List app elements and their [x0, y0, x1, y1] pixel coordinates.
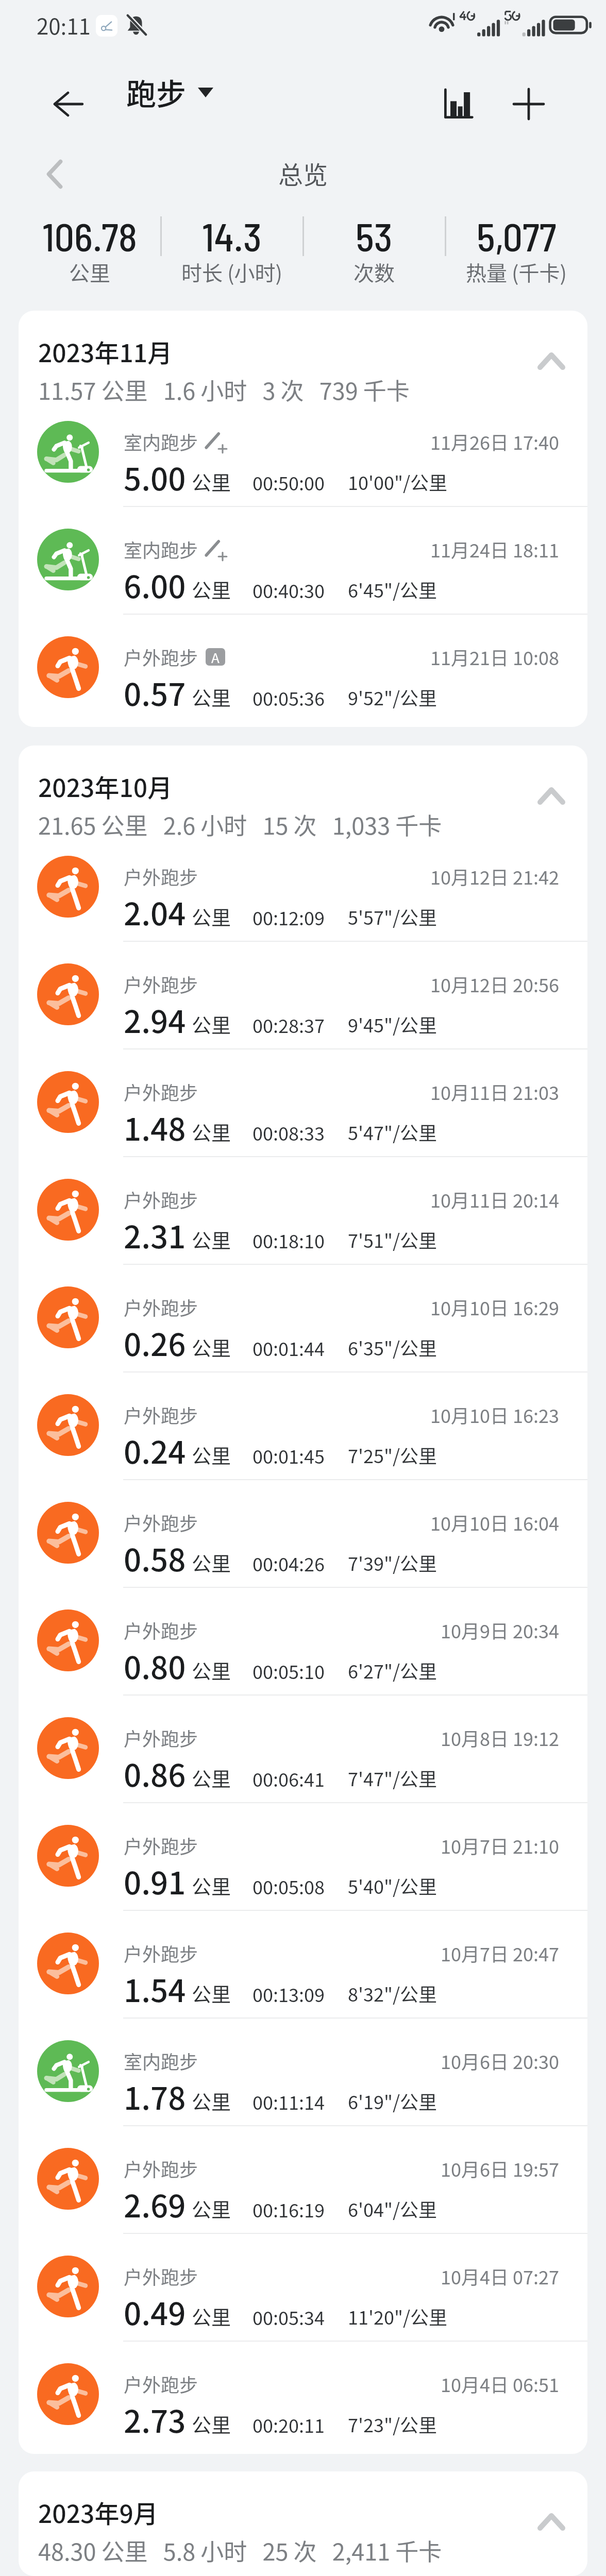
staticText: 5,077 [477, 212, 557, 259]
staticText: 11.57 公里 1.6 小时 3 次 739 千卡 [38, 373, 410, 406]
button[interactable]: 室内跑步 [19, 2018, 587, 2125]
button[interactable]: 户外跑步 [19, 1802, 587, 1910]
button[interactable]: 户外跑步 [19, 941, 587, 1048]
staticText: 21.65 公里 2.6 小时 15 次 1,033 千卡 [38, 808, 442, 841]
staticText: 6'19"/公里 [348, 2088, 437, 2114]
staticText: 7'51"/公里 [348, 1226, 437, 1253]
staticText: 7'23"/公里 [348, 2411, 437, 2437]
staticText: 公里 [192, 2087, 231, 2115]
staticText: 2023年11月 [38, 333, 173, 369]
staticText: 00:12:09 [252, 904, 325, 930]
staticText: 公里 [192, 1871, 231, 1900]
staticText: 2.73 [124, 2397, 186, 2442]
staticText: 公里 [192, 2302, 231, 2330]
staticText: 8'32"/公里 [348, 1980, 437, 2007]
staticText: 10月6日 19:57 [19, 2155, 559, 2182]
button[interactable]: 户外跑步 [19, 1479, 587, 1587]
button[interactable]: Back [35, 71, 101, 137]
staticText: 户外跑步 [124, 971, 198, 997]
staticText: 公里 [192, 1764, 231, 1792]
staticText: 0.80 [124, 1643, 186, 1688]
button[interactable]: 户外跑步 [19, 2341, 587, 2448]
staticText: 公里 [192, 1440, 231, 1469]
staticText: 00:05:08 [252, 1873, 325, 1900]
button[interactable]: 2023年10月 [19, 745, 587, 833]
staticText: 公里 [192, 683, 231, 711]
staticText: 户外跑步 [124, 1724, 198, 1751]
button[interactable]: 户外跑步 [19, 1264, 587, 1371]
staticText: 7'47"/公里 [348, 1765, 437, 1791]
staticText: 室内跑步 [124, 2047, 198, 2074]
button[interactable]: 户外跑步 [19, 614, 587, 721]
staticText: 户外跑步 [124, 1401, 198, 1428]
staticText: 6'35"/公里 [348, 1334, 437, 1361]
staticText: 公里 [192, 2194, 231, 2223]
staticText: 1.54 [124, 1966, 186, 2011]
staticText: 0.91 [124, 1858, 186, 1903]
staticText: 0.49 [124, 2289, 186, 2334]
staticText: 106.78 [42, 212, 137, 259]
staticText: 室内跑步 [124, 536, 198, 563]
staticText: 10'00"/公里 [348, 468, 448, 495]
staticText: 户外跑步 [124, 643, 198, 670]
button[interactable]: 户外跑步 [19, 1156, 587, 1264]
staticText: 公里 [192, 575, 231, 603]
button[interactable]: 户外跑步 [19, 1910, 587, 2018]
staticText: 10月11日 21:03 [19, 1078, 559, 1105]
staticText: 2023年9月 [38, 2494, 158, 2530]
button[interactable]: 户外跑步 [19, 833, 587, 941]
staticText: 00:08:33 [252, 1119, 325, 1146]
staticText: 5'47"/公里 [348, 1118, 437, 1145]
button[interactable]: 跑步 [126, 62, 213, 123]
staticText: 9'45"/公里 [348, 1011, 437, 1038]
staticText: 户外跑步 [124, 1078, 198, 1105]
staticText: 0.57 [124, 670, 186, 715]
staticText: 户外跑步 [124, 2263, 198, 2290]
button[interactable]: 室内跑步 [19, 398, 587, 506]
staticText: 10月7日 20:47 [19, 1940, 559, 1967]
staticText: 5.00 [124, 454, 186, 499]
staticText: 7'39"/公里 [348, 1549, 437, 1576]
staticText: 00:16:19 [252, 2196, 325, 2223]
button[interactable]: Previous period [30, 147, 79, 201]
staticText: 户外跑步 [124, 2155, 198, 2182]
button[interactable]: Statistics [426, 71, 492, 137]
button[interactable]: 2023年9月 [19, 2471, 587, 2559]
staticText: 户外跑步 [124, 1617, 198, 1643]
staticText: 6'27"/公里 [348, 1657, 437, 1684]
staticText: 10月8日 19:12 [19, 1724, 559, 1751]
staticText: 00:04:26 [252, 1550, 325, 1577]
button[interactable]: 户外跑步 [19, 1048, 587, 1156]
staticText: 户外跑步 [124, 1294, 198, 1320]
button[interactable]: 户外跑步 [19, 1371, 587, 1479]
staticText: 时长 (小时) [181, 257, 282, 286]
button[interactable]: 户外跑步 [19, 2233, 587, 2341]
button[interactable]: 户外跑步 [19, 2559, 587, 2576]
button[interactable]: 室内跑步 [19, 506, 587, 614]
staticText: 公里 [192, 1979, 231, 2007]
staticText: 10月4日 06:51 [19, 2370, 559, 2397]
staticText: 0.26 [124, 1320, 186, 1365]
staticText: 2.94 [124, 997, 186, 1042]
staticText: 公里 [192, 1548, 231, 1577]
staticText: 10月10日 16:23 [19, 1401, 559, 1428]
button[interactable]: 户外跑步 [19, 1694, 587, 1802]
staticText: 2.31 [124, 1212, 186, 1257]
staticText: A [211, 648, 220, 665]
staticText: 00:01:44 [252, 1334, 325, 1361]
staticText: 00:11:14 [252, 2088, 325, 2115]
staticText: 10月12日 21:42 [19, 863, 559, 890]
button[interactable]: 2023年11月 [19, 311, 587, 398]
staticText: 14.3 [202, 212, 262, 259]
staticText: 0.58 [124, 1535, 186, 1580]
staticText: 11月24日 18:11 [19, 536, 559, 563]
staticText: 11月21日 10:08 [19, 643, 559, 670]
staticText: 0.86 [124, 1751, 186, 1795]
button[interactable]: 户外跑步 [19, 2125, 587, 2233]
staticText: 20:11 [37, 9, 91, 41]
staticText: 00:20:11 [252, 2411, 325, 2438]
staticText: 10月11日 20:14 [19, 1186, 559, 1213]
button[interactable]: 户外跑步 [19, 1587, 587, 1694]
button[interactable]: Add [496, 71, 562, 137]
staticText: 次数 [353, 257, 395, 286]
